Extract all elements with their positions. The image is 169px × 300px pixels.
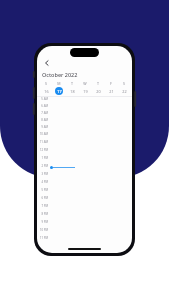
staticText: 4 PM <box>41 180 48 184</box>
staticText: 10 PM <box>39 228 48 232</box>
button[interactable]: 8 PM <box>37 212 132 220</box>
button[interactable]: 5 PM <box>37 188 132 196</box>
button[interactable]: 11 AM <box>37 140 132 148</box>
staticText: T <box>71 81 73 86</box>
button[interactable]: 6 AM <box>37 104 132 111</box>
staticText: 16 <box>44 89 49 94</box>
button[interactable]: T <box>91 81 104 95</box>
button[interactable]: S <box>117 81 130 95</box>
staticText: 7 AM <box>41 111 48 115</box>
staticText: 11 AM <box>39 140 48 144</box>
staticText: 8 PM <box>41 212 48 216</box>
staticText: S <box>45 81 47 86</box>
button[interactable]: 11 PM <box>37 236 132 244</box>
button[interactable]: 3 PM <box>37 172 132 180</box>
button[interactable]: 7 AM <box>37 111 132 118</box>
staticText: 8 AM <box>41 118 48 122</box>
button[interactable]: 9 AM <box>37 125 132 132</box>
button[interactable]: 8 AM <box>37 118 132 125</box>
button[interactable]: 10 AM <box>37 132 132 140</box>
staticText: 9 PM <box>41 220 48 224</box>
button[interactable]: 10 PM <box>37 228 132 236</box>
button[interactable]: 9 PM <box>37 220 132 228</box>
staticText: 18 <box>70 89 75 94</box>
staticText: 1 PM <box>41 156 48 160</box>
button[interactable]: Back <box>41 57 52 68</box>
staticText: M <box>57 81 61 86</box>
button[interactable]: 7 PM <box>37 204 132 212</box>
staticText: 3 PM <box>41 172 48 176</box>
staticText: 7 PM <box>41 204 48 208</box>
staticText: 5 PM <box>41 188 48 192</box>
staticText: 10 AM <box>39 132 48 136</box>
button[interactable]: 12 PM <box>37 148 132 156</box>
button[interactable]: 1 PM <box>37 156 132 164</box>
staticText: W <box>83 81 87 86</box>
button[interactable]: 2 PM <box>37 164 132 172</box>
staticText: October 2022 <box>42 71 78 78</box>
button[interactable]: T <box>65 81 78 95</box>
staticText: 19 <box>83 89 88 94</box>
staticText: 9 AM <box>41 125 48 129</box>
staticText: 21 <box>109 89 114 94</box>
button[interactable]: S <box>39 81 52 95</box>
staticText: T <box>97 81 99 86</box>
staticText: F <box>110 81 112 86</box>
button[interactable]: 4 PM <box>37 180 132 188</box>
staticText: 12 PM <box>39 148 48 152</box>
staticText: 17 <box>57 89 62 94</box>
button[interactable]: 6 PM <box>37 196 132 204</box>
staticText: 22 <box>122 89 127 94</box>
staticText: 6 PM <box>41 196 48 200</box>
staticText: S <box>123 81 125 86</box>
staticText: 2 PM <box>41 164 48 168</box>
button[interactable]: W <box>78 81 91 95</box>
staticText: 11 PM <box>39 236 48 240</box>
button[interactable]: 5 AM <box>37 97 132 104</box>
staticText: 5 AM <box>41 97 48 101</box>
staticText: 20 <box>96 89 101 94</box>
staticText: 6 AM <box>41 104 48 108</box>
button[interactable]: M <box>52 81 65 95</box>
button[interactable]: F <box>104 81 117 95</box>
